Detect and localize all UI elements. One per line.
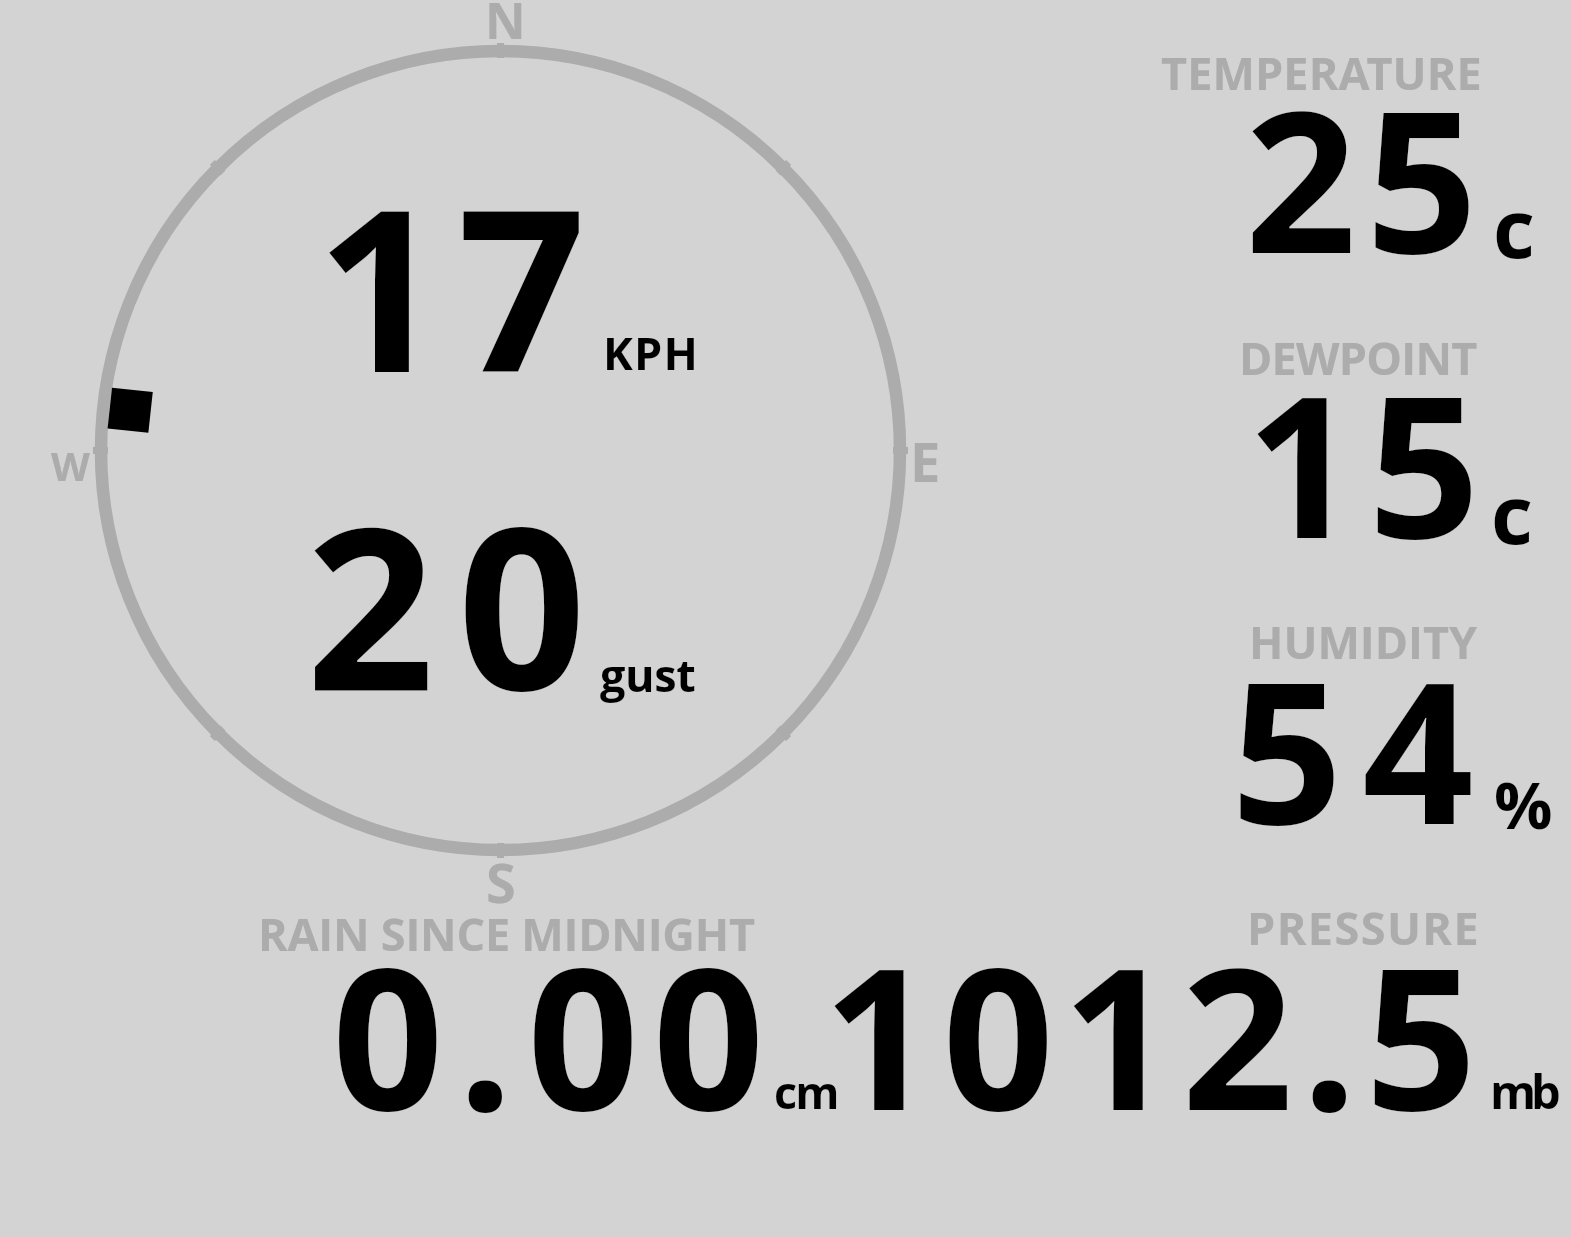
staticText: TEMPERATURE (1161, 42, 1482, 103)
staticText: c (1493, 171, 1535, 282)
staticText: PRESSURE (1247, 897, 1481, 958)
staticText: mb (1490, 1059, 1556, 1123)
staticText: KPH (603, 322, 700, 383)
staticText: W (51, 438, 90, 493)
staticText: RAIN SINCE MIDNIGHT (258, 903, 755, 964)
staticText: 25 (1245, 45, 1487, 311)
staticText: 20 (306, 450, 609, 756)
staticText: E (910, 424, 941, 498)
staticText: HUMIDITY (1249, 611, 1478, 672)
button[interactable]: Humidity 54 percent (1150, 610, 1571, 840)
staticText: cm (774, 1061, 838, 1122)
staticText: S (486, 845, 516, 919)
staticText: 0.00 (332, 902, 779, 1168)
button[interactable]: Pressure 1012.5 millibar (860, 896, 1571, 1126)
button[interactable]: Dewpoint 15 degrees Celsius (1150, 326, 1571, 556)
staticText: 54 (1231, 616, 1494, 882)
staticText: DEWPOINT (1239, 327, 1477, 388)
staticText: 17 (316, 132, 599, 438)
staticText: 15 (1246, 330, 1491, 596)
staticText: N (485, 0, 526, 54)
staticText: gust (600, 644, 696, 705)
staticText: 1012.5 (823, 902, 1485, 1168)
button[interactable]: Wind direction compass (94, 44, 907, 857)
staticText: % (1494, 760, 1553, 849)
button[interactable]: Rain since midnight 0.00 cm (250, 896, 850, 1126)
staticText: c (1491, 457, 1533, 568)
button[interactable]: Temperature 25 degrees Celsius (1150, 40, 1571, 270)
